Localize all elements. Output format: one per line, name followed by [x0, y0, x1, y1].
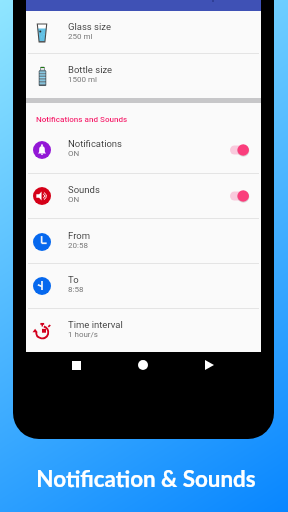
staticText: From — [68, 230, 91, 241]
staticText: Glass size — [68, 21, 112, 32]
staticText: Notification & Sounds — [2, 465, 288, 492]
staticText: Notifications and Sounds — [36, 114, 128, 123]
button[interactable]: From — [26, 219, 261, 264]
staticText: Sounds — [68, 184, 100, 195]
staticText: Time interval — [68, 319, 123, 330]
staticText: 1500 ml — [68, 75, 97, 84]
staticText: Notifications — [68, 138, 123, 149]
button[interactable]: Back — [205, 360, 214, 370]
button[interactable]: Home — [138, 360, 148, 370]
staticText: ON — [68, 195, 80, 204]
button[interactable]: Time interval — [26, 309, 261, 352]
button[interactable]: Sounds — [26, 173, 261, 218]
staticText: 20:58 — [68, 241, 88, 250]
button[interactable]: To — [26, 264, 261, 308]
staticText: To — [68, 274, 79, 285]
button[interactable]: Glass size — [26, 11, 261, 54]
staticText: Bottle size — [68, 64, 113, 75]
staticText: ON — [68, 149, 80, 158]
staticText: 250 ml — [68, 32, 93, 41]
button[interactable]: Notifications — [26, 127, 261, 172]
staticText: 8:58 — [68, 285, 84, 294]
staticText: 1 hour/s — [68, 330, 98, 339]
button[interactable]: Bottle size — [26, 54, 261, 98]
